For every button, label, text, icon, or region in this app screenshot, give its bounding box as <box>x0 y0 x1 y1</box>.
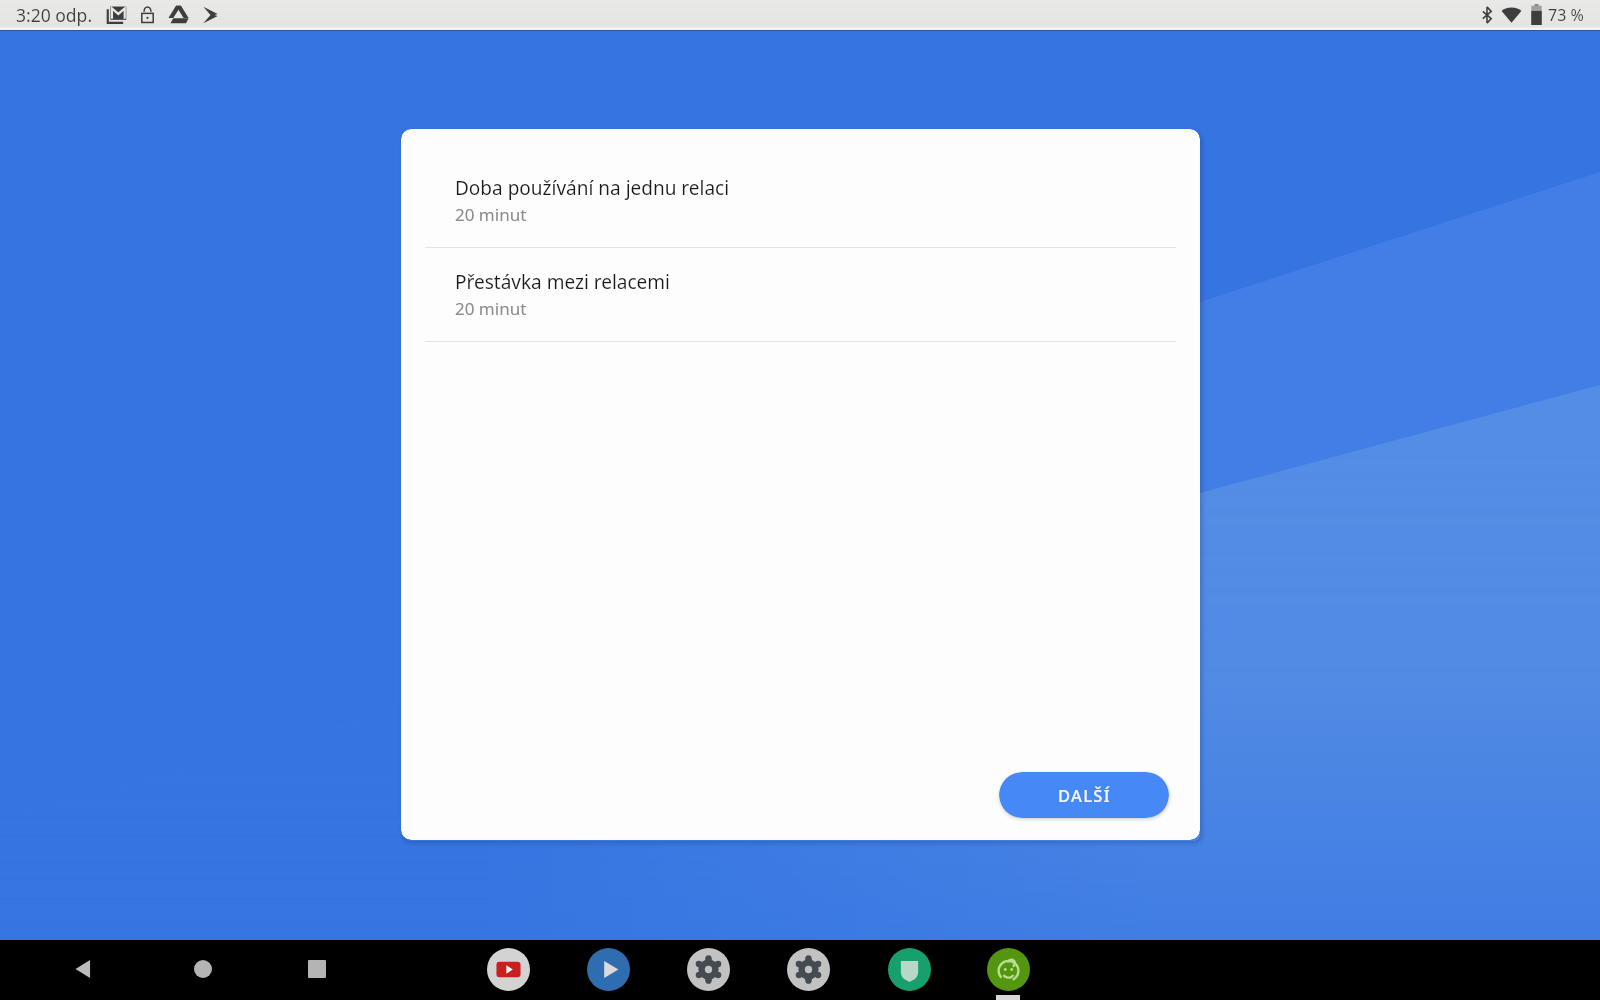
button[interactable]: Family Link <box>983 944 1033 994</box>
button[interactable]: Google Play <box>583 944 633 994</box>
button[interactable]: DALŠÍ <box>999 772 1169 818</box>
staticText: 3:20 odp. <box>16 3 93 27</box>
staticText: 73 % <box>1548 4 1584 26</box>
button[interactable]: Doba používání na jednu relaci <box>401 129 1200 247</box>
button[interactable]: Přestávka mezi relacemi <box>401 248 1200 341</box>
button[interactable]: Settings <box>683 944 733 994</box>
button[interactable]: YouTube <box>483 944 533 994</box>
staticText: 20 minut <box>455 203 527 226</box>
staticText: 20 minut <box>455 297 527 320</box>
button[interactable]: Home <box>180 946 226 992</box>
button[interactable]: Back <box>60 946 106 992</box>
button[interactable]: Security <box>884 944 934 994</box>
button[interactable]: Recent apps <box>294 946 340 992</box>
staticText: DALŠÍ <box>1058 784 1111 806</box>
staticText: Přestávka mezi relacemi <box>455 269 671 295</box>
button[interactable]: Settings <box>783 944 833 994</box>
staticText: Doba používání na jednu relaci <box>455 175 730 201</box>
